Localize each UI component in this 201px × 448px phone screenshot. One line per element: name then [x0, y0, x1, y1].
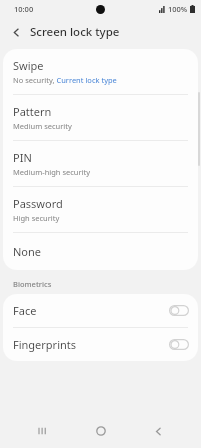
button[interactable]: Home: [86, 416, 116, 446]
button[interactable]: Pattern: [3, 95, 198, 141]
button[interactable]: Back: [143, 416, 173, 446]
staticText: Password: [13, 196, 63, 211]
staticText: Face: [13, 303, 37, 318]
staticText: None: [13, 244, 42, 259]
button[interactable]: Recents: [28, 416, 58, 446]
staticText: 10:00: [14, 4, 34, 14]
button[interactable]: PIN: [3, 141, 198, 187]
staticText: Medium security: [13, 121, 72, 131]
staticText: Swipe: [13, 58, 44, 73]
staticText: No security, Current lock type: [13, 75, 117, 85]
staticText: Biometrics: [13, 279, 52, 289]
staticText: Fingerprints: [13, 337, 77, 352]
button[interactable]: Password: [3, 187, 198, 233]
staticText: Medium-high security: [13, 167, 91, 177]
button[interactable]: Face: [3, 294, 198, 328]
staticText: High security: [13, 213, 60, 223]
button[interactable]: None: [3, 233, 198, 270]
staticText: Screen lock type: [30, 24, 120, 40]
button[interactable]: Fingerprints: [3, 328, 198, 361]
staticText: 100%: [168, 4, 188, 14]
staticText: PIN: [13, 150, 32, 165]
button[interactable]: Back: [7, 23, 25, 41]
button[interactable]: Swipe: [3, 49, 198, 95]
staticText: Pattern: [13, 104, 52, 119]
